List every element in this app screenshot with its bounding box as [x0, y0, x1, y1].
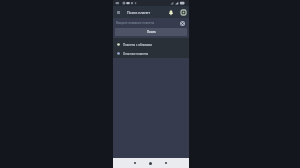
- button[interactable]: Notifications: [167, 6, 175, 18]
- button[interactable]: Home: [145, 158, 156, 168]
- button[interactable]: Menu: [115, 6, 122, 18]
- button[interactable]: Поиск: [115, 28, 187, 36]
- button[interactable]: Планеты с облаками: [113, 40, 189, 49]
- button[interactable]: Profile: [179, 6, 187, 18]
- staticText: Поиск: [147, 30, 156, 34]
- staticText: Введите название планеты: [116, 21, 155, 25]
- button[interactable]: Опасные планеты: [113, 49, 189, 58]
- button[interactable]: Recents: [160, 158, 171, 168]
- staticText: Планеты с облаками: [123, 43, 153, 47]
- staticText: Поиск планет: [127, 10, 151, 15]
- button[interactable]: Clear: [178, 18, 186, 28]
- button[interactable]: Back: [129, 158, 140, 168]
- staticText: Опасные планеты: [123, 52, 149, 56]
